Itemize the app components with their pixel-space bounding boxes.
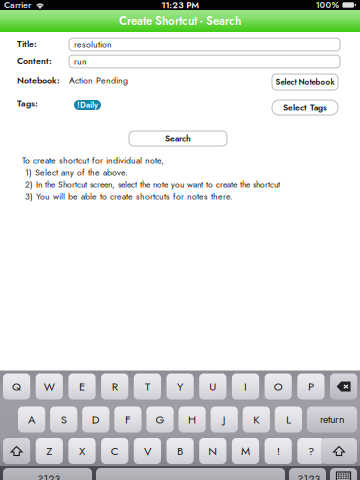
staticText: K	[253, 411, 259, 428]
button[interactable]: S	[50, 406, 77, 432]
button[interactable]: return	[307, 406, 357, 432]
staticText: S	[61, 411, 67, 428]
staticText: Content:	[17, 55, 52, 67]
staticText: Carrier	[4, 0, 31, 11]
button[interactable]: W	[36, 373, 63, 399]
button[interactable]: Shift	[321, 438, 357, 464]
button[interactable]: H	[178, 406, 206, 432]
staticText: Select Tags	[283, 101, 327, 114]
staticText: W	[44, 378, 55, 395]
staticText: return	[320, 412, 344, 427]
staticText: Tags:	[17, 97, 38, 110]
staticText: 3) You will be able to create shortcuts …	[22, 190, 233, 203]
button[interactable]: F	[114, 406, 141, 432]
staticText: N	[208, 443, 217, 459]
staticText: H	[188, 411, 196, 428]
staticText: X	[79, 443, 85, 459]
button[interactable]: J	[211, 406, 238, 432]
button[interactable]: !	[265, 438, 292, 464]
staticText: To create shortcut for individual note,	[22, 154, 164, 167]
button[interactable]: A	[18, 406, 45, 432]
staticText: .?123	[34, 471, 60, 480]
staticText: A	[28, 411, 35, 428]
staticText: Create Shortcut - Search	[119, 13, 241, 29]
button[interactable]: Search	[129, 131, 227, 146]
staticText: T	[145, 378, 150, 395]
button[interactable]: Y	[166, 373, 194, 399]
button[interactable]: P	[297, 373, 324, 399]
button[interactable]: Shift	[3, 438, 30, 464]
staticText: !Daily	[77, 99, 98, 111]
button[interactable]: space	[96, 468, 285, 480]
staticText: resolution	[74, 38, 112, 51]
staticText: C	[111, 443, 119, 459]
button[interactable]: Hide Keyboard	[330, 468, 357, 480]
staticText: Title:	[17, 38, 37, 50]
button[interactable]: G	[146, 406, 174, 432]
staticText: Z	[46, 443, 52, 459]
staticText: U	[209, 378, 216, 395]
button[interactable]: O	[265, 373, 292, 399]
button[interactable]: X	[68, 438, 96, 464]
staticText: B	[177, 443, 183, 459]
staticText: Q	[12, 378, 21, 395]
staticText: V	[144, 443, 151, 459]
staticText: Select Notebook	[275, 76, 334, 88]
staticText: L	[286, 411, 291, 428]
staticText: 1) Select any of the above.	[22, 166, 128, 179]
staticText: I	[244, 378, 247, 395]
button[interactable]: B	[166, 438, 194, 464]
button[interactable]: R	[101, 373, 128, 399]
staticText: Search	[165, 132, 191, 145]
button[interactable]: E	[68, 373, 96, 399]
button[interactable]: Q	[3, 373, 30, 399]
staticText: G	[155, 411, 164, 428]
button[interactable]: K	[243, 406, 270, 432]
button[interactable]: Z	[36, 438, 63, 464]
staticText: R	[112, 378, 118, 395]
staticText: .?123	[294, 471, 320, 480]
staticText: Notebook:	[17, 74, 60, 87]
button[interactable]: D	[82, 406, 109, 432]
staticText: F	[125, 411, 131, 428]
staticText: O	[274, 378, 283, 395]
staticText: 100%	[315, 0, 339, 11]
staticText: run	[74, 55, 87, 68]
button[interactable]: V	[134, 438, 161, 464]
button[interactable]: T	[134, 373, 161, 399]
staticText: M	[241, 443, 250, 459]
button[interactable]: I	[232, 373, 259, 399]
staticText: 2) In the Shortcut screen, select the no…	[22, 178, 280, 191]
staticText: !	[277, 443, 280, 459]
button[interactable]: Numbers	[3, 468, 92, 480]
staticText: Action Pending	[69, 74, 128, 87]
button[interactable]: C	[101, 438, 128, 464]
button[interactable]: L	[275, 406, 302, 432]
button[interactable]: Numbers	[289, 468, 326, 480]
button[interactable]: N	[199, 438, 226, 464]
staticText: E	[79, 378, 85, 395]
staticText: 11:23 PM	[161, 0, 199, 11]
button[interactable]: Select Notebook	[272, 74, 338, 90]
staticText: D	[92, 411, 100, 428]
staticText: Y	[177, 378, 183, 395]
button[interactable]: Select Tags	[272, 100, 338, 115]
staticText: P	[308, 378, 314, 395]
button[interactable]: ?	[297, 438, 324, 464]
staticText: ?	[308, 443, 314, 459]
staticText: J	[223, 411, 226, 428]
button[interactable]: Delete	[330, 373, 357, 399]
button[interactable]: U	[199, 373, 226, 399]
button[interactable]: M	[232, 438, 259, 464]
